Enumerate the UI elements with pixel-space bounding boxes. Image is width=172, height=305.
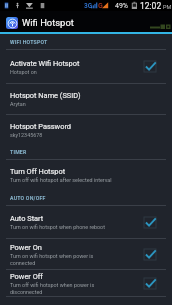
- button[interactable]: Toggle setting: [144, 278, 156, 289]
- button[interactable]: Wifi Hotspot: [0, 11, 172, 32]
- staticText: Turn Off Hotspot: [10, 167, 66, 176]
- button[interactable]: Toggle setting: [144, 249, 156, 260]
- button[interactable]: Hotspot Password: [0, 115, 172, 144]
- button[interactable]: Toggle setting: [144, 61, 156, 72]
- staticText: Wifi Hotspot: [22, 17, 74, 28]
- staticText: Turn on wifi hotspot when phone reboot: [10, 224, 105, 230]
- staticText: G: [98, 2, 103, 10]
- staticText: 12:02: [140, 1, 162, 11]
- button[interactable]: Toggle setting: [144, 217, 156, 228]
- staticText: Auto Start: [10, 214, 44, 223]
- staticText: Turn on wifi hotspot when power is conne…: [10, 253, 94, 266]
- staticText: Arytan: [10, 101, 26, 107]
- staticText: sky12345678: [10, 132, 43, 138]
- staticText: Hotspot on: [10, 69, 37, 75]
- staticText: AUTO ON/OFF: [10, 195, 46, 201]
- staticText: Power Off: [10, 272, 43, 281]
- staticText: TIMER: [10, 149, 27, 155]
- staticText: WIFI HOTSPOT: [10, 39, 48, 45]
- staticText: Power On: [10, 243, 42, 252]
- button[interactable]: Hotspot Name (SSID): [0, 84, 172, 114]
- staticText: Activate Wifi Hotspot: [10, 59, 80, 68]
- button[interactable]: Turn Off Hotspot: [0, 160, 172, 190]
- button[interactable]: Auto Start: [0, 206, 172, 238]
- staticText: 3G: [84, 2, 93, 10]
- staticText: PM: [163, 4, 172, 10]
- staticText: 49%: [115, 2, 128, 10]
- staticText: Hotspot Password: [10, 122, 71, 131]
- button[interactable]: Power Off: [0, 270, 172, 296]
- staticText: Turn off wifi hotspot when power is disc…: [10, 282, 95, 295]
- staticText: Turn off wifi hotspot after selected int…: [10, 177, 112, 183]
- staticText: Hotspot Name (SSID): [10, 91, 81, 100]
- button[interactable]: Activate Wifi Hotspot: [0, 50, 172, 83]
- button[interactable]: Power On: [0, 239, 172, 269]
